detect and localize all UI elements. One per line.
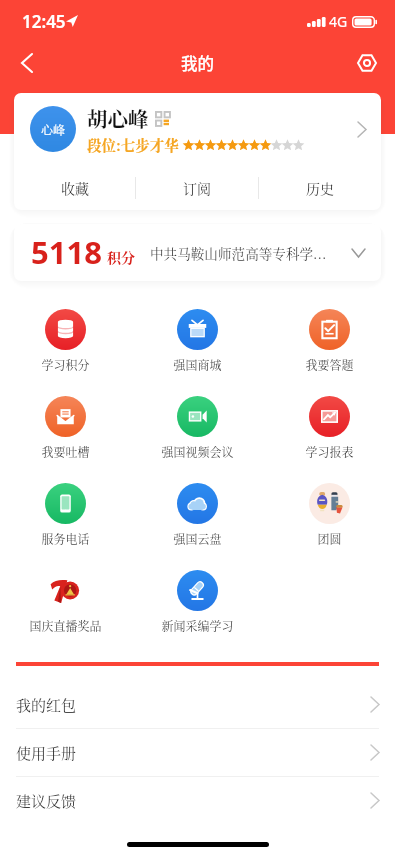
staticText: 收藏: [61, 178, 89, 198]
staticText: 心峰: [41, 121, 66, 138]
button[interactable]: 强国视频会议: [131, 396, 263, 483]
staticText: 学习积分: [41, 356, 90, 373]
button[interactable]: 国庆直播奖品: [0, 570, 131, 657]
button[interactable]: 团圆: [263, 483, 395, 570]
button[interactable]: 我要答题: [263, 309, 395, 396]
button[interactable]: 学习积分: [0, 309, 131, 396]
staticText: 我的: [181, 51, 214, 75]
button[interactable]: 强国商城: [131, 309, 263, 396]
staticText: 12:45: [22, 10, 66, 33]
staticText: 团圆: [317, 530, 342, 547]
button[interactable]: 收藏: [14, 165, 135, 210]
button[interactable]: 历史: [259, 165, 381, 210]
button[interactable]: 5118: [14, 224, 381, 281]
staticText: 积分: [107, 247, 135, 267]
staticText: 历史: [306, 178, 334, 198]
button[interactable]: 建议反馈: [0, 777, 395, 824]
staticText: 订阅: [183, 178, 211, 198]
staticText: 服务电话: [41, 530, 90, 547]
staticText: 5118: [31, 231, 102, 273]
button[interactable]: 学习报表: [263, 396, 395, 483]
button[interactable]: Back: [4, 41, 50, 85]
button[interactable]: 新闻采编学习: [131, 570, 263, 657]
staticText: 学习报表: [305, 443, 354, 460]
staticText: 4G: [329, 12, 348, 31]
button[interactable]: 服务电话: [0, 483, 131, 570]
staticText: 胡心峰: [87, 103, 149, 132]
staticText: 建议反馈: [16, 790, 77, 812]
staticText: 使用手册: [16, 742, 77, 764]
staticText: 我要答题: [305, 356, 354, 373]
staticText: 新闻采编学习: [161, 617, 234, 634]
button[interactable]: 订阅: [136, 165, 258, 210]
button[interactable]: 心峰: [14, 93, 381, 165]
button[interactable]: 我要吐槽: [0, 396, 131, 483]
staticText: 我要吐槽: [41, 443, 90, 460]
button[interactable]: 使用手册: [0, 729, 395, 776]
button[interactable]: Settings: [344, 41, 390, 85]
staticText: 我的红包: [16, 694, 77, 716]
staticText: 国庆直播奖品: [29, 617, 102, 634]
staticText: 强国商城: [173, 356, 222, 373]
staticText: 段位:七步才华: [87, 134, 179, 155]
staticText: 强国视频会议: [161, 443, 234, 460]
button[interactable]: 我的红包: [0, 681, 395, 728]
staticText: 强国云盘: [173, 530, 222, 547]
button[interactable]: 强国云盘: [131, 483, 263, 570]
staticText: 中共马鞍山师范高等专科学...: [150, 243, 348, 263]
